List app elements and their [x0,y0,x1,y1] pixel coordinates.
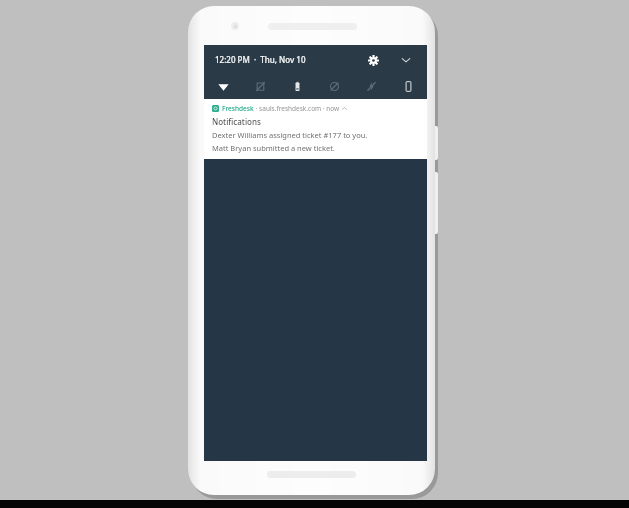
staticText: Freshdesk [222,104,254,113]
button[interactable]: Quick setting [204,74,242,99]
button[interactable]: Quick setting [353,74,390,99]
staticText: Notifications [212,116,261,127]
button[interactable]: Quick setting [390,74,427,99]
button[interactable]: Quick setting [316,74,353,99]
button[interactable]: Quick setting [242,74,279,99]
button[interactable]: Expand [396,50,416,70]
staticText: 12:20 PM · Thu, Nov 10 [215,54,306,65]
staticText: Dexter Williams assigned ticket #177 to … [212,130,368,140]
staticText: Matt Bryan submitted a new ticket. [212,143,335,153]
button[interactable]: Quick setting [279,74,316,99]
staticText: · sauls.freshdesk.com · now [254,104,340,113]
button[interactable]: Settings [363,50,383,70]
button[interactable]: Freshdesk [204,99,427,159]
